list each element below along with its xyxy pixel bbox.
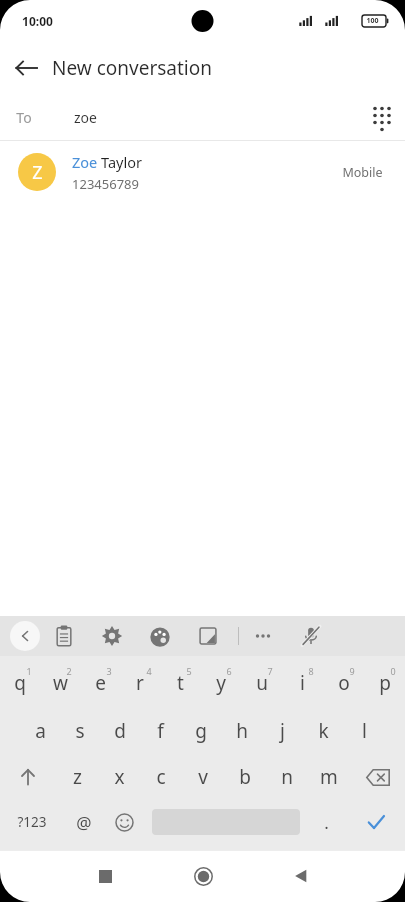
staticText: j — [280, 718, 285, 744]
button[interactable]: Home — [179, 852, 227, 900]
button[interactable]: Recents — [81, 852, 129, 900]
staticText: b — [239, 764, 251, 790]
button[interactable]: w — [40, 662, 80, 708]
button[interactable]: Collapse toolbar — [10, 621, 40, 651]
staticText: 3 — [106, 665, 112, 677]
button[interactable]: Voice input off — [287, 616, 335, 656]
staticText: x — [114, 764, 125, 790]
staticText: i — [300, 670, 305, 696]
staticText: 10:00 — [22, 13, 53, 29]
button[interactable]: Done — [347, 800, 405, 844]
staticText: n — [281, 764, 293, 790]
staticText: f — [157, 718, 164, 744]
button[interactable]: Back — [0, 42, 52, 94]
button[interactable]: Settings — [88, 616, 136, 656]
button[interactable]: Resize — [184, 616, 232, 656]
button[interactable]: s — [60, 708, 100, 754]
staticText: a — [35, 718, 46, 744]
button[interactable]: Space — [145, 800, 306, 844]
staticText: z — [73, 764, 82, 790]
staticText: zoe — [74, 108, 97, 127]
staticText: p — [379, 670, 391, 696]
staticText: y — [216, 670, 226, 696]
button[interactable]: Shift — [0, 754, 56, 800]
staticText: Z — [32, 160, 43, 185]
button[interactable]: Dial pad — [359, 94, 405, 140]
staticText: l — [362, 718, 367, 744]
staticText: 4 — [146, 665, 152, 677]
button[interactable]: Back — [277, 852, 325, 900]
staticText: 6 — [226, 665, 232, 677]
button[interactable]: q — [0, 662, 40, 708]
staticText: e — [95, 670, 106, 696]
button[interactable]: More options — [239, 616, 287, 656]
button[interactable]: i — [282, 662, 323, 708]
button[interactable]: e — [80, 662, 120, 708]
staticText: 8 — [308, 665, 314, 677]
staticText: . — [324, 811, 329, 834]
button[interactable]: n — [266, 754, 308, 800]
staticText: g — [195, 718, 207, 744]
staticText: o — [338, 670, 350, 696]
button[interactable]: f — [140, 708, 180, 754]
button[interactable]: ?123 — [0, 800, 63, 844]
staticText: q — [14, 670, 26, 696]
button[interactable]: Theme — [136, 616, 184, 656]
staticText: New conversation — [52, 55, 212, 81]
button[interactable]: j — [262, 708, 303, 754]
button[interactable]: . — [306, 800, 347, 844]
button[interactable]: Z — [0, 141, 405, 203]
button[interactable]: t — [160, 662, 200, 708]
button[interactable]: b — [224, 754, 266, 800]
staticText: Zoe Taylor — [72, 152, 142, 172]
button[interactable]: @ — [63, 800, 104, 844]
button[interactable]: u — [241, 662, 282, 708]
staticText: v — [198, 764, 208, 790]
staticText: m — [320, 764, 338, 790]
button[interactable]: Clipboard — [40, 616, 88, 656]
button[interactable]: y — [200, 662, 241, 708]
staticText: To — [16, 108, 32, 127]
button[interactable]: v — [182, 754, 224, 800]
staticText: ?123 — [17, 813, 47, 831]
button[interactable]: o — [323, 662, 364, 708]
staticText: Mobile — [342, 164, 383, 181]
staticText: d — [114, 718, 126, 744]
button[interactable]: Emoji — [104, 800, 145, 844]
button[interactable]: r — [120, 662, 160, 708]
button[interactable]: a — [20, 708, 60, 754]
staticText: w — [53, 670, 68, 696]
staticText: 9 — [349, 665, 355, 677]
staticText: u — [256, 670, 268, 696]
staticText: s — [75, 718, 85, 744]
staticText: @ — [76, 811, 92, 834]
button[interactable]: Backspace — [350, 754, 405, 800]
button[interactable]: k — [303, 708, 344, 754]
button[interactable]: m — [308, 754, 350, 800]
staticText: 0 — [390, 665, 396, 677]
staticText: r — [136, 670, 144, 696]
button[interactable]: x — [98, 754, 140, 800]
button[interactable]: d — [100, 708, 140, 754]
button[interactable]: l — [344, 708, 385, 754]
staticText: 123456789 — [72, 175, 139, 193]
staticText: 2 — [66, 665, 72, 677]
button[interactable]: g — [180, 708, 221, 754]
staticText: t — [177, 670, 184, 696]
button[interactable]: c — [140, 754, 182, 800]
staticText: h — [236, 718, 248, 744]
staticText: c — [156, 764, 166, 790]
staticText: 100 — [366, 16, 379, 26]
button[interactable]: p — [364, 662, 405, 708]
staticText: 1 — [26, 665, 32, 677]
staticText: 7 — [267, 665, 273, 677]
button[interactable]: h — [221, 708, 262, 754]
button[interactable]: z — [56, 754, 98, 800]
staticText: 5 — [186, 665, 192, 677]
staticText: k — [318, 718, 329, 744]
